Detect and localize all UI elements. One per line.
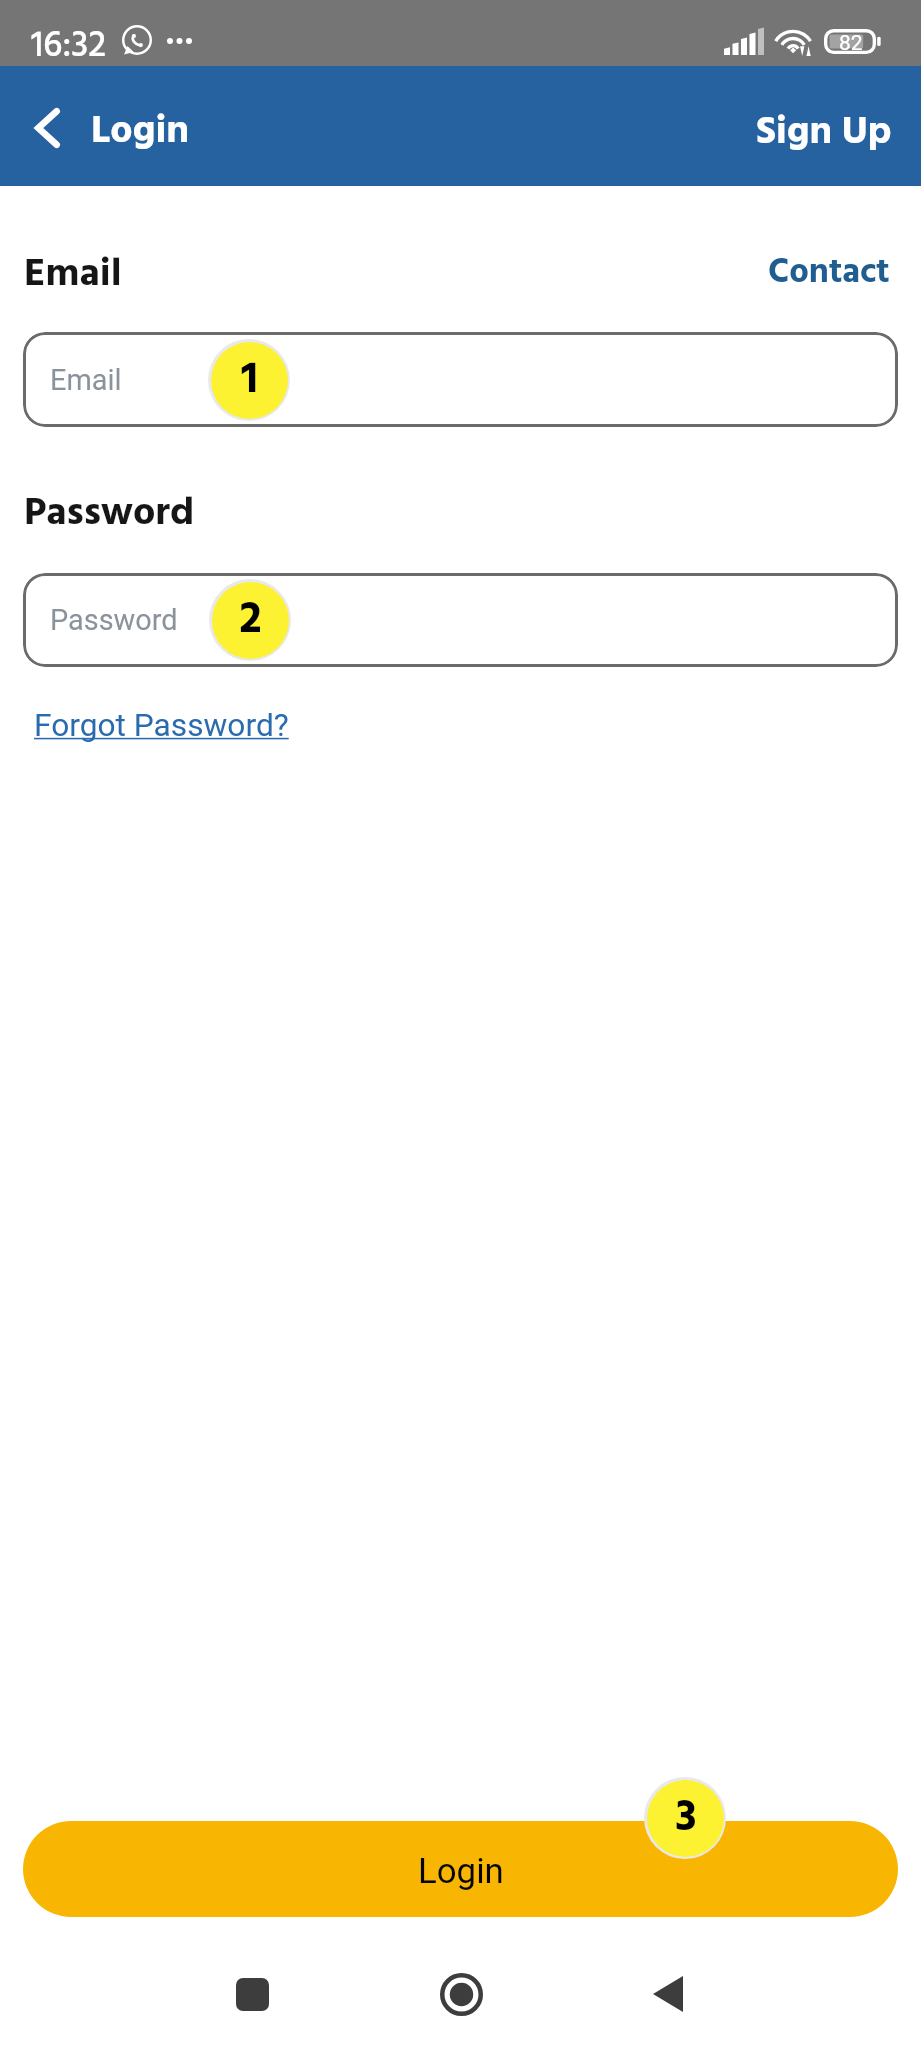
staticText: Email bbox=[24, 243, 122, 306]
staticText: 3 bbox=[675, 1784, 697, 1854]
staticText: Forgot Password? bbox=[34, 707, 289, 744]
staticText: Email bbox=[50, 363, 122, 397]
button[interactable]: Email bbox=[23, 332, 898, 427]
button[interactable]: Forgot Password? bbox=[20, 696, 302, 754]
staticText: 82 bbox=[839, 31, 863, 56]
button[interactable]: Back bbox=[11, 85, 83, 171]
staticText: Password bbox=[50, 603, 178, 637]
button[interactable]: Login bbox=[23, 1821, 898, 1917]
button[interactable]: Home bbox=[401, 1940, 521, 2048]
button[interactable]: Contact bbox=[751, 239, 906, 305]
staticText: Sign Up bbox=[756, 102, 892, 164]
staticText: 16:32 bbox=[31, 18, 107, 76]
staticText: Login bbox=[418, 1851, 504, 1892]
button[interactable]: Password bbox=[23, 573, 898, 667]
staticText: Login bbox=[91, 101, 190, 164]
staticText: Contact bbox=[768, 245, 890, 300]
staticText: Password bbox=[24, 482, 195, 545]
staticText: 1 bbox=[241, 346, 258, 416]
button[interactable]: Recent apps bbox=[192, 1940, 312, 2048]
button[interactable]: Sign Up bbox=[736, 85, 911, 181]
staticText: 2 bbox=[239, 586, 262, 656]
button[interactable]: Back bbox=[608, 1940, 728, 2048]
